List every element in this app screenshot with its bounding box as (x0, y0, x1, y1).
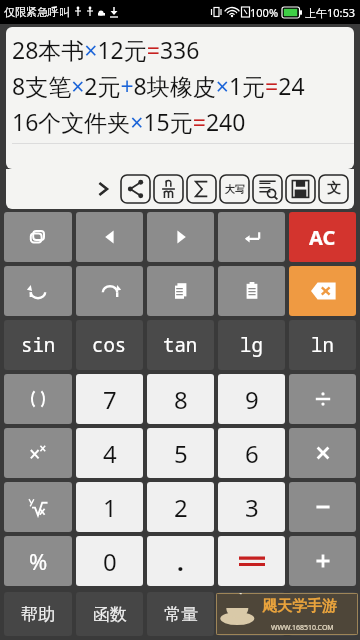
staticText: 大写 (225, 183, 245, 196)
button[interactable]: lg (218, 320, 285, 370)
staticText: 4 (103, 437, 117, 470)
button[interactable]: 常量 (147, 592, 214, 636)
button[interactable]: Equals (218, 536, 285, 586)
button[interactable]: ln (289, 320, 356, 370)
button[interactable]: Root (4, 482, 72, 532)
staticText: 7 (103, 383, 117, 416)
button[interactable] (289, 592, 356, 636)
button[interactable]: Search history (252, 174, 283, 204)
button[interactable]: Enter (218, 212, 285, 262)
staticText: WWW.168510.COM (271, 623, 334, 633)
staticText: 函数 (93, 604, 127, 625)
button[interactable]: 6 (218, 428, 285, 478)
button[interactable]: Sum (186, 174, 217, 204)
staticText: sin (21, 332, 56, 358)
button[interactable]: 9 (218, 374, 285, 424)
button[interactable]: Plus (289, 536, 356, 586)
button[interactable]: 文 (318, 174, 349, 204)
staticText: 文 (327, 180, 341, 198)
button[interactable]: 5 (147, 428, 214, 478)
button[interactable]: Divide (289, 374, 356, 424)
button[interactable]: Paste (218, 266, 285, 316)
staticText: AC (309, 224, 336, 251)
button[interactable]: AC (289, 212, 356, 262)
staticText: 仅限紧急呼叫 (4, 5, 70, 19)
button[interactable]: Save (285, 174, 316, 204)
button[interactable]: 函数 (76, 592, 143, 636)
button[interactable]: . (147, 536, 214, 586)
staticText: 常量 (164, 604, 198, 625)
button[interactable]: Copy (147, 266, 214, 316)
staticText: 上午10:53 (305, 5, 356, 20)
button[interactable]: Move right (147, 212, 214, 262)
button[interactable]: 1 (76, 482, 143, 532)
staticText: 2 (174, 491, 188, 524)
button[interactable]: 8 (147, 374, 214, 424)
button[interactable]: Duplicate (4, 212, 72, 262)
button[interactable]: Multiply (289, 428, 356, 478)
staticText: . (177, 545, 184, 578)
button[interactable]: Backspace (289, 266, 356, 316)
button[interactable]: Move left (76, 212, 143, 262)
button[interactable]: Fraction (153, 174, 184, 204)
button[interactable]: 7 (76, 374, 143, 424)
button[interactable] (218, 592, 285, 636)
staticText: 飓天学手游 (262, 597, 337, 616)
staticText: 100% (250, 5, 279, 20)
staticText: 28本书×12元=336 (12, 34, 200, 65)
staticText: tan (163, 332, 198, 358)
button[interactable]: 大写 (219, 174, 250, 204)
button[interactable]: Next (87, 172, 119, 206)
staticText: 3 (245, 491, 259, 524)
staticText: 6 (245, 437, 259, 470)
button[interactable]: 28本书×12元=336 (6, 27, 354, 169)
button[interactable]: 4 (76, 428, 143, 478)
button[interactable]: 0 (76, 536, 143, 586)
staticText: % (29, 546, 48, 576)
button[interactable]: Parentheses (4, 374, 72, 424)
staticText: 1 (103, 491, 117, 524)
button[interactable]: % (4, 536, 72, 586)
button[interactable]: cos (76, 320, 143, 370)
staticText: 16个文件夹×15元=240 (12, 106, 246, 137)
staticText: 9 (245, 383, 259, 416)
staticText: 8支笔×2元+8块橡皮×1元=24 (12, 70, 305, 101)
button[interactable]: x to the power y (4, 428, 72, 478)
staticText: 帮助 (21, 604, 55, 625)
button[interactable]: 2 (147, 482, 214, 532)
button[interactable]: Share (120, 174, 151, 204)
button[interactable]: Minus (289, 482, 356, 532)
button[interactable]: 帮助 (4, 592, 72, 636)
button[interactable]: 3 (218, 482, 285, 532)
staticText: 0 (103, 545, 117, 578)
staticText: lg (240, 332, 263, 358)
staticText: cos (92, 332, 127, 358)
button[interactable]: sin (4, 320, 72, 370)
button[interactable]: Undo (4, 266, 72, 316)
staticText: 5 (174, 437, 188, 470)
button[interactable]: Redo (76, 266, 143, 316)
staticText: ln (311, 332, 334, 358)
button[interactable]: tan (147, 320, 214, 370)
staticText: 8 (174, 383, 188, 416)
